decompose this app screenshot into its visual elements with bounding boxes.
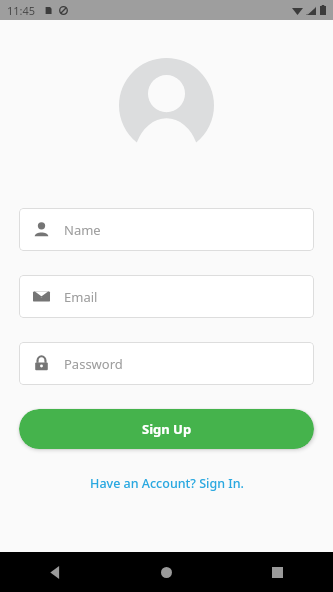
staticText: Email: [64, 288, 98, 306]
button[interactable]: Home: [111, 552, 222, 592]
button[interactable]: Recent apps: [222, 552, 333, 592]
staticText: Sign Up: [142, 420, 192, 438]
staticText: Have an Account? Sign In.: [90, 475, 244, 492]
button[interactable]: Back: [0, 552, 111, 592]
staticText: Name: [64, 221, 101, 239]
button[interactable]: Name: [19, 208, 314, 251]
staticText: Password: [64, 355, 123, 373]
button[interactable]: Email: [19, 275, 314, 318]
button[interactable]: Have an Account? Sign In.: [78, 471, 256, 496]
button[interactable]: Sign Up: [19, 409, 314, 449]
button[interactable]: Password: [19, 342, 314, 385]
staticText: 11:45: [7, 3, 36, 18]
